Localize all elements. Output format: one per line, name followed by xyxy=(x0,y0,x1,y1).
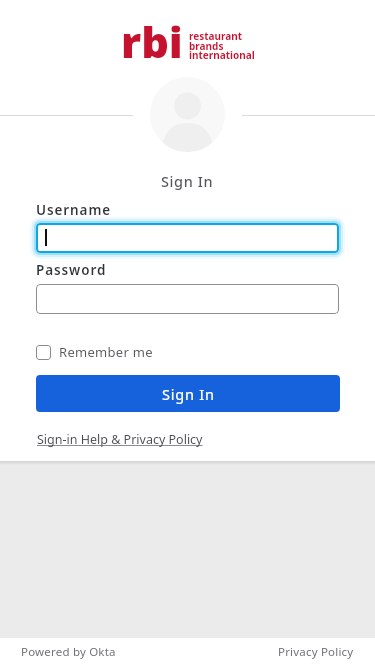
button[interactable] xyxy=(36,223,339,253)
staticText: Remember me xyxy=(59,343,153,361)
staticText: Username xyxy=(36,201,112,219)
button[interactable]: Remember me xyxy=(36,343,153,361)
staticText: Sign In xyxy=(162,384,215,404)
button[interactable] xyxy=(36,284,339,314)
staticText: Password xyxy=(36,261,107,279)
button[interactable]: Powered by Okta xyxy=(21,644,116,660)
button[interactable]: Sign-in Help & Privacy Policy xyxy=(37,431,203,448)
button[interactable]: Privacy Policy xyxy=(278,644,354,660)
staticText: rbi xyxy=(121,12,183,71)
staticText: international xyxy=(189,48,255,62)
button[interactable]: Sign In xyxy=(36,375,340,412)
staticText: brands xyxy=(189,39,224,53)
staticText: Sign In xyxy=(161,171,214,191)
staticText: restaurant xyxy=(189,29,243,43)
